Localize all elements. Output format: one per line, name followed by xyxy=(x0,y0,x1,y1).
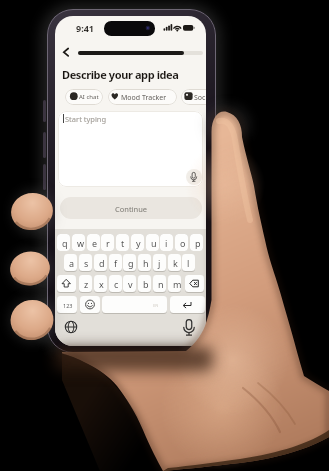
button[interactable]: r xyxy=(101,234,114,251)
button[interactable]: z xyxy=(79,275,92,292)
staticText: m xyxy=(173,278,181,290)
staticText: h xyxy=(143,257,149,269)
staticText: 123 xyxy=(63,302,73,309)
staticText: d xyxy=(99,257,105,269)
staticText: y xyxy=(136,237,141,249)
button[interactable]: i xyxy=(160,234,173,251)
button[interactable]: y xyxy=(131,234,144,251)
staticText: o xyxy=(180,237,186,249)
button[interactable]: s xyxy=(79,254,92,271)
staticText: s xyxy=(84,257,89,269)
button[interactable]: o xyxy=(175,234,188,251)
staticText: l xyxy=(187,257,190,269)
staticText: i xyxy=(165,237,168,249)
staticText: v xyxy=(128,278,133,290)
button[interactable] xyxy=(182,319,196,336)
button[interactable] xyxy=(186,169,202,185)
button[interactable]: h xyxy=(138,254,151,271)
button[interactable]: n xyxy=(153,275,166,292)
button[interactable]: Social ap xyxy=(181,89,206,105)
staticText: z xyxy=(84,278,89,290)
button[interactable]: a xyxy=(64,254,77,271)
button[interactable] xyxy=(80,296,100,313)
staticText: q xyxy=(62,237,68,249)
button[interactable]: p xyxy=(190,234,203,251)
button[interactable]: c xyxy=(109,275,122,292)
staticText: w xyxy=(77,237,85,249)
staticText: b xyxy=(143,278,149,290)
staticText: j xyxy=(158,257,161,269)
staticText: Describe your app idea xyxy=(62,67,179,82)
button[interactable]: g xyxy=(123,254,136,271)
staticText: r xyxy=(106,237,110,249)
button[interactable]: EN xyxy=(102,296,167,313)
staticText: x xyxy=(99,278,104,290)
staticText: p xyxy=(195,237,201,249)
button[interactable]: d xyxy=(94,254,107,271)
staticText: g xyxy=(128,257,134,269)
staticText: EN xyxy=(153,303,159,308)
staticText: Continue xyxy=(115,204,148,214)
button[interactable]: Continue xyxy=(60,197,202,219)
button[interactable]: Mood Tracker xyxy=(108,89,177,105)
button[interactable] xyxy=(64,320,78,334)
button[interactable]: k xyxy=(168,254,181,271)
button[interactable]: Start typing xyxy=(58,111,203,187)
staticText: Mood Tracker xyxy=(121,93,167,103)
staticText: 9:41 xyxy=(76,22,94,34)
staticText: e xyxy=(92,237,98,249)
staticText: a xyxy=(69,257,75,269)
button[interactable]: j xyxy=(153,254,166,271)
staticText: AI chat xyxy=(79,93,99,101)
staticText: Start typing xyxy=(65,114,107,124)
button[interactable] xyxy=(170,296,205,313)
button[interactable]: m xyxy=(168,275,181,292)
staticText: c xyxy=(114,278,119,290)
staticText: t xyxy=(121,237,125,249)
button[interactable]: AI chat xyxy=(65,89,103,105)
button[interactable]: l xyxy=(182,254,195,271)
button[interactable] xyxy=(57,275,76,292)
staticText: n xyxy=(158,278,164,290)
staticText: f xyxy=(114,257,118,269)
button[interactable]: q xyxy=(57,234,70,251)
button[interactable] xyxy=(59,46,71,58)
button[interactable]: f xyxy=(109,254,122,271)
button[interactable]: 123 xyxy=(57,296,77,313)
button[interactable]: v xyxy=(123,275,136,292)
button[interactable]: x xyxy=(94,275,107,292)
button[interactable]: e xyxy=(87,234,100,251)
staticText: k xyxy=(173,257,178,269)
button[interactable]: t xyxy=(116,234,129,251)
button[interactable]: w xyxy=(72,234,85,251)
staticText: u xyxy=(151,237,157,249)
button[interactable] xyxy=(185,275,204,292)
button[interactable]: b xyxy=(138,275,151,292)
staticText: Social ap xyxy=(194,93,206,103)
button[interactable]: u xyxy=(146,234,159,251)
